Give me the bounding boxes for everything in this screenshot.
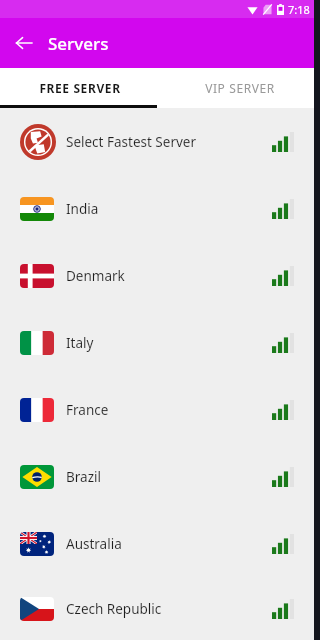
staticText: France (66, 401, 109, 419)
button[interactable]: VIP SERVER (160, 68, 320, 108)
button[interactable]: Select Fastest Server (0, 108, 320, 175)
button[interactable]: India (0, 175, 320, 242)
button[interactable]: France (0, 376, 320, 443)
staticText: Australia (66, 535, 122, 553)
staticText: India (66, 200, 99, 218)
staticText: Italy (66, 334, 94, 352)
button[interactable]: Australia (0, 510, 320, 577)
staticText: Servers (48, 32, 109, 55)
staticText: FREE SERVER (39, 80, 121, 96)
staticText: Denmark (66, 267, 125, 285)
staticText: VIP SERVER (205, 80, 275, 96)
button[interactable]: Denmark (0, 242, 320, 309)
staticText: 7:18 (288, 2, 310, 17)
button[interactable]: Brazil (0, 443, 320, 510)
button[interactable]: FREE SERVER (0, 68, 160, 108)
button[interactable]: Czech Republic (0, 577, 320, 640)
staticText: Czech Republic (66, 600, 162, 618)
staticText: Select Fastest Server (66, 133, 197, 151)
button[interactable]: Italy (0, 309, 320, 376)
staticText: Brazil (66, 468, 101, 486)
button[interactable]: Back (8, 27, 40, 59)
